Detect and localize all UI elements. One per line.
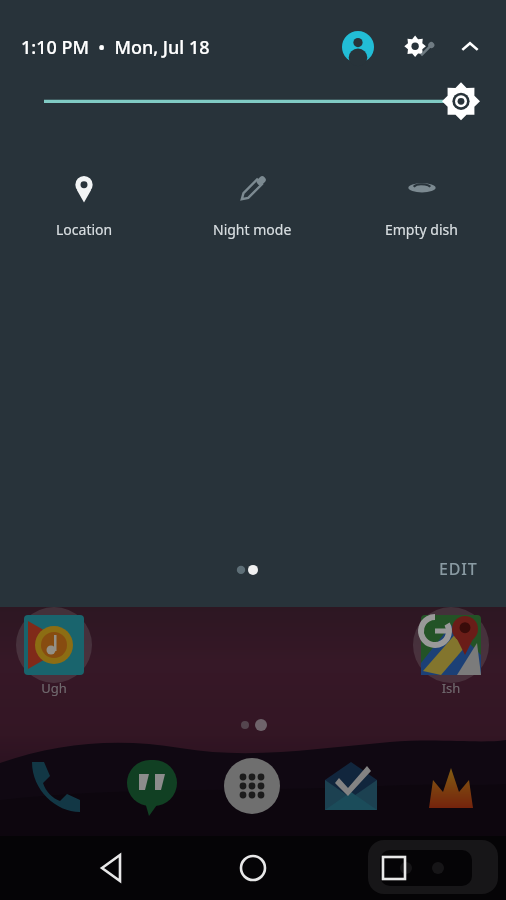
button[interactable]: Night mode	[168, 168, 337, 243]
button[interactable]: Recent apps	[362, 845, 426, 891]
staticText: EDIT	[439, 558, 478, 580]
button[interactable]: Collapse	[450, 27, 490, 67]
staticText: Location	[56, 220, 113, 239]
button[interactable]: Brightness	[0, 80, 506, 136]
button[interactable]: EDIT	[433, 556, 484, 594]
button[interactable]: Settings	[396, 25, 440, 69]
button[interactable]: User	[338, 27, 378, 67]
button[interactable]: Location	[0, 168, 168, 243]
button[interactable]: Empty dish	[337, 168, 506, 243]
button[interactable]: Back	[80, 845, 144, 891]
button[interactable]: Home	[221, 845, 285, 891]
staticText: Ugh	[0, 679, 108, 697]
staticText: 1:10 PM • Mon, Jul 18	[21, 35, 210, 60]
staticText: Empty dish	[385, 220, 458, 239]
staticText: Ish	[397, 679, 505, 697]
staticText: Night mode	[213, 220, 292, 239]
